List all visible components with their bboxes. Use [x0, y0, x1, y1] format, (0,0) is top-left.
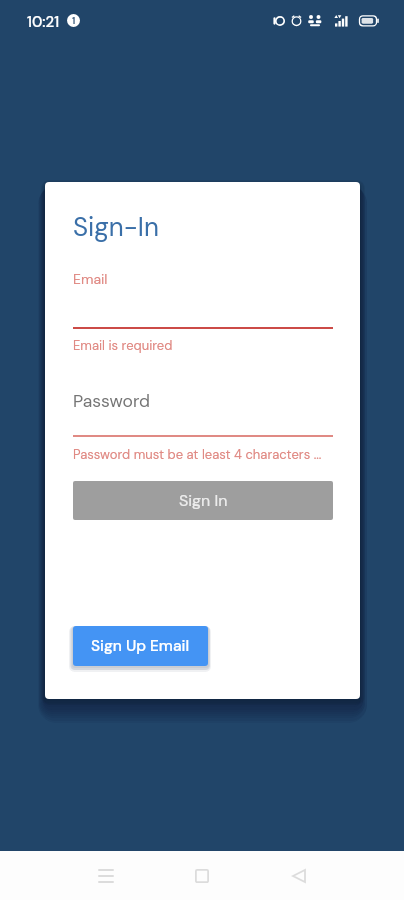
staticText: 1 — [72, 15, 76, 27]
button[interactable]: Home — [172, 851, 232, 900]
staticText: Sign Up Email — [91, 636, 190, 656]
staticText: Email — [73, 270, 108, 288]
button[interactable]: Recent apps — [76, 851, 136, 900]
staticText: Password — [73, 390, 151, 413]
staticText: Sign In — [179, 490, 228, 511]
staticText: Password must be at least 4 characters .… — [73, 446, 322, 463]
button[interactable]: Back — [269, 851, 329, 900]
staticText: Email is required — [73, 337, 173, 354]
button[interactable]: Sign Up Email — [73, 626, 208, 666]
staticText: Sign-In — [73, 210, 159, 244]
button[interactable]: Sign In — [73, 481, 333, 520]
staticText: 10:21 — [27, 12, 60, 32]
